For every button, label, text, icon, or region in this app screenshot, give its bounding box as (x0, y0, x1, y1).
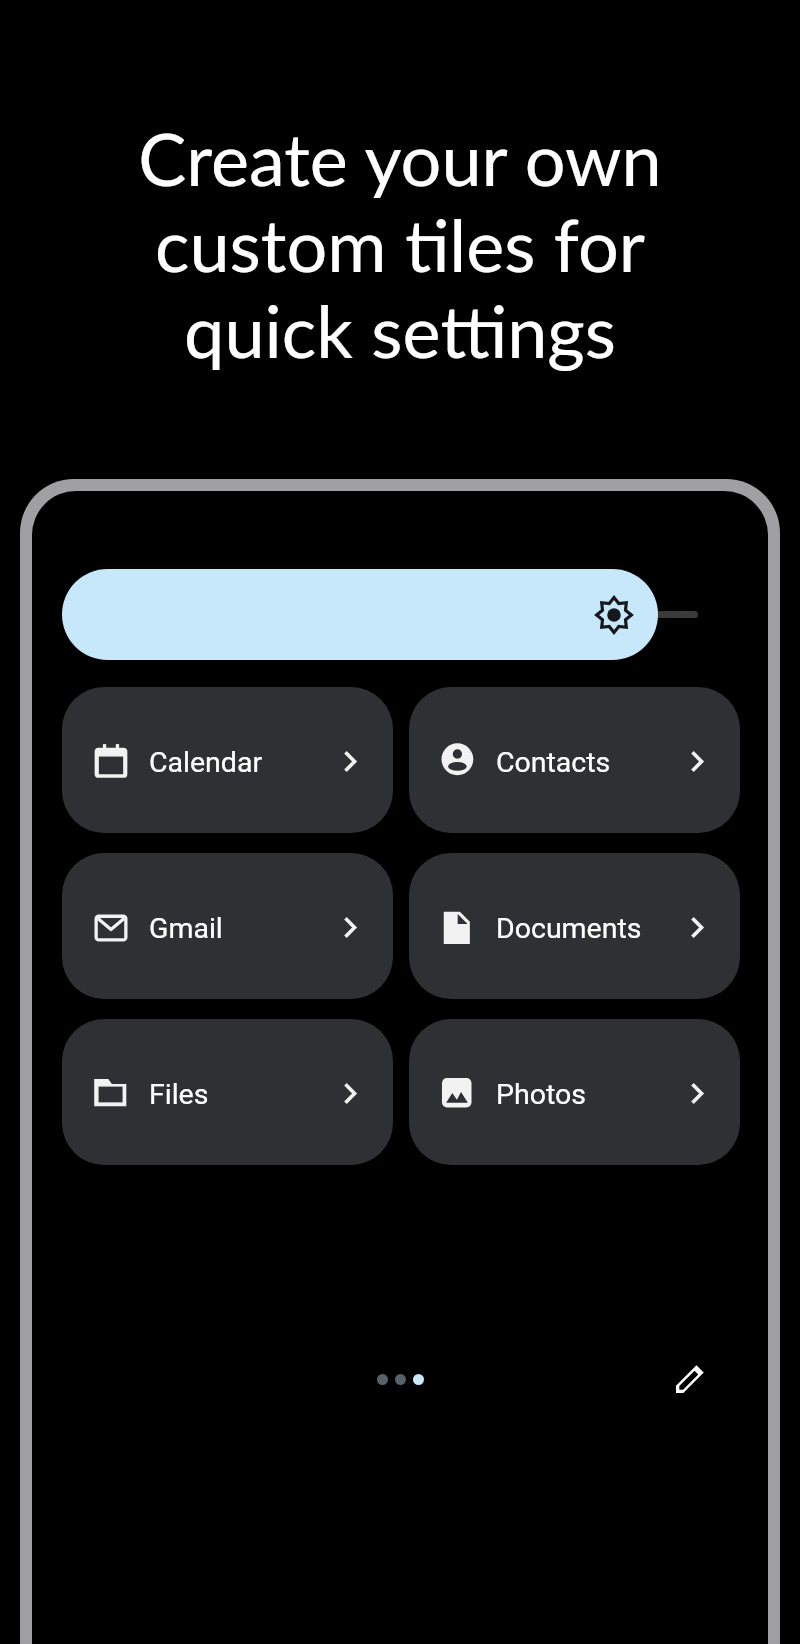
button[interactable]: Brightness (62, 569, 658, 660)
staticText: Gmail (149, 912, 223, 945)
button[interactable]: Photos (409, 1019, 740, 1165)
button[interactable]: Calendar (62, 687, 393, 833)
staticText: Files (149, 1078, 209, 1111)
button[interactable]: Gmail (62, 853, 393, 999)
button[interactable]: Contacts (409, 687, 740, 833)
staticText: Contacts (496, 746, 611, 779)
other: Brightness (596, 597, 632, 633)
button[interactable]: Edit tiles (666, 1355, 714, 1403)
staticText: Create your own custom tiles for quick s… (0, 115, 800, 373)
staticText: Photos (496, 1078, 586, 1111)
button[interactable]: Files (62, 1019, 393, 1165)
button[interactable]: Documents (409, 853, 740, 999)
staticText: Calendar (149, 746, 263, 779)
staticText: Documents (496, 912, 642, 945)
